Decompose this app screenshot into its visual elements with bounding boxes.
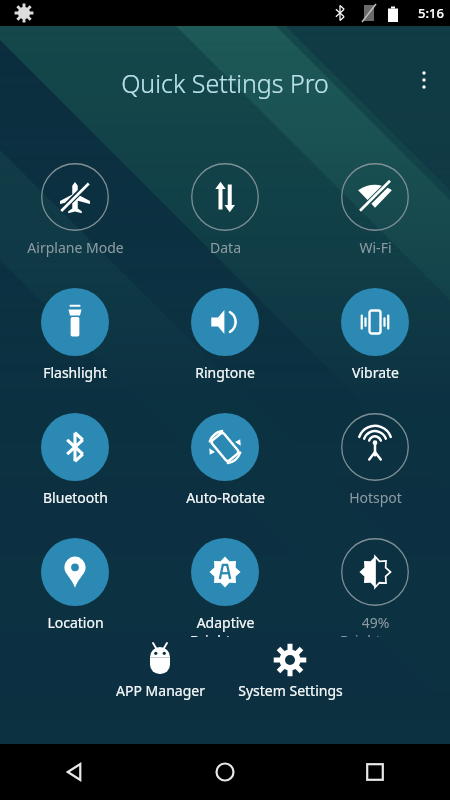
staticText: 5:16 [418,4,444,22]
staticText: Adaptive Brightness [190,613,261,637]
staticText: Ringtone [195,363,255,382]
button[interactable]: Data [150,137,300,262]
staticText: Quick Settings Pro [121,66,329,100]
button[interactable]: APP Manager [95,643,225,700]
staticText: Flashlight [43,363,107,382]
staticText: Auto-Rotate [186,488,265,507]
staticText: Data [210,238,241,257]
staticText: Location [47,613,104,632]
button[interactable]: Hotspot [300,387,450,512]
button[interactable]: Ringtone [150,262,300,387]
staticText: 49% Brightness [340,613,411,637]
button[interactable]: Bluetooth [0,387,150,512]
button[interactable]: Auto-Rotate [150,387,300,512]
button[interactable]: Home [150,744,300,800]
staticText: Bluetooth [43,488,108,507]
staticText: Airplane Mode [27,238,124,257]
button[interactable]: Recents [300,744,450,800]
button[interactable]: Wi-Fi [300,137,450,262]
button[interactable]: 49% Brightness [300,512,450,637]
button[interactable]: Back [0,744,150,800]
button[interactable]: Location [0,512,150,637]
button[interactable]: Vibrate [300,262,450,387]
button[interactable]: System Settings [225,643,355,700]
staticText: Wi-Fi [359,238,392,257]
staticText: Hotspot [349,488,402,507]
staticText: APP Manager [116,681,205,700]
staticText: System Settings [238,681,343,700]
button[interactable]: More options [406,62,442,98]
button[interactable]: Airplane Mode [0,137,150,262]
staticText: Vibrate [352,363,399,382]
button[interactable]: Flashlight [0,262,150,387]
button[interactable]: Adaptive Brightness [150,512,300,637]
